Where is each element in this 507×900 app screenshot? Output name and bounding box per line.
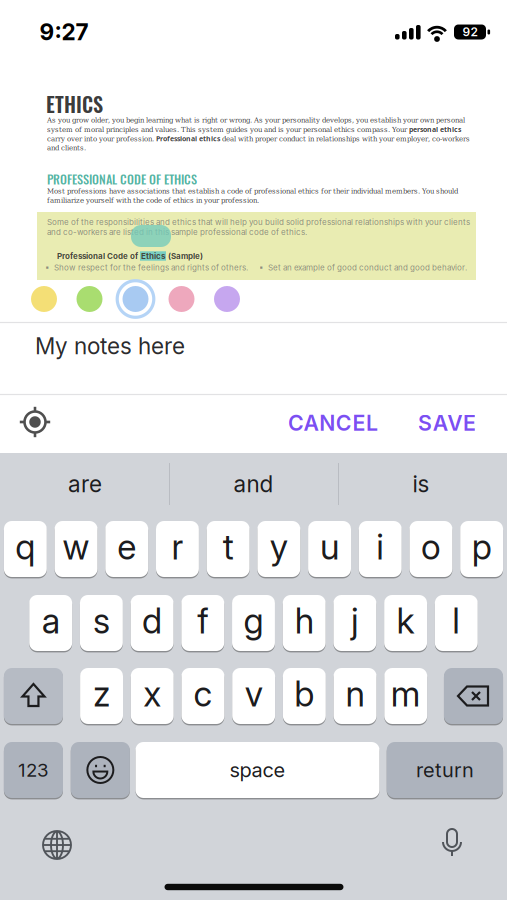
staticText: r <box>171 527 183 567</box>
button[interactable]: Dictate <box>440 827 464 861</box>
staticText: e <box>117 527 136 567</box>
button[interactable]: c <box>181 668 224 724</box>
button[interactable]: Locate annotation <box>15 402 55 442</box>
staticText: As you grow older, you begin learning wh… <box>47 116 465 124</box>
staticText: ▪ Set an example of good conduct and goo… <box>259 263 467 272</box>
button[interactable]: space <box>135 742 379 798</box>
button[interactable]: h <box>283 595 326 651</box>
button[interactable]: d <box>131 595 174 651</box>
button[interactable]: Delete <box>444 668 503 724</box>
staticText: s <box>93 601 110 641</box>
staticText: is <box>412 471 429 497</box>
button[interactable]: SAVE <box>410 402 484 444</box>
staticText: and co-workers are listed in this sample… <box>47 227 307 237</box>
staticText: c <box>193 674 212 714</box>
staticText: and <box>233 471 273 497</box>
staticText: v <box>245 674 263 714</box>
button[interactable]: Purple highlight <box>214 286 240 312</box>
staticText: f <box>197 601 208 641</box>
staticText: Some of the responsibilities and ethics … <box>47 217 470 227</box>
button[interactable]: j <box>333 595 376 651</box>
button[interactable]: is <box>351 459 491 509</box>
button[interactable]: u <box>308 521 351 577</box>
staticText: x <box>143 674 161 714</box>
staticText: o <box>421 527 441 567</box>
button[interactable]: m <box>384 668 427 724</box>
staticText: (Sample) <box>166 251 203 261</box>
button[interactable]: Pink highlight <box>168 286 194 312</box>
staticText: d <box>142 601 162 641</box>
button[interactable]: z <box>80 668 123 724</box>
staticText: t <box>223 527 234 567</box>
button[interactable]: k <box>384 595 427 651</box>
staticText: system of moral principles and values. T… <box>47 125 461 134</box>
button[interactable]: are <box>15 459 155 509</box>
button[interactable]: g <box>232 595 275 651</box>
button[interactable]: w <box>55 521 97 577</box>
staticText: CANCEL <box>288 410 378 436</box>
button[interactable]: Emoji <box>71 742 130 798</box>
button[interactable]: and <box>183 459 323 509</box>
staticText: 92 <box>462 25 477 39</box>
staticText: SAVE <box>418 410 476 436</box>
staticText: w <box>63 527 90 567</box>
staticText: p <box>472 527 492 567</box>
staticText: u <box>320 527 339 567</box>
staticText: return <box>416 758 474 782</box>
button[interactable]: Yellow highlight <box>31 286 57 312</box>
staticText: b <box>294 674 314 714</box>
button[interactable]: s <box>80 595 123 651</box>
button[interactable]: f <box>181 595 224 651</box>
button[interactable]: 123 <box>4 742 63 798</box>
button[interactable]: p <box>460 521 503 577</box>
staticText: z <box>93 674 110 714</box>
staticText: familiarize yourself with the code of et… <box>47 196 259 204</box>
button[interactable]: CANCEL <box>280 402 386 444</box>
button[interactable]: e <box>105 521 148 577</box>
staticText: space <box>229 758 285 782</box>
button[interactable]: q <box>4 521 47 577</box>
staticText: h <box>295 601 314 641</box>
staticText: i <box>376 527 384 567</box>
button[interactable]: r <box>156 521 199 577</box>
button[interactable]: v <box>232 668 275 724</box>
staticText: 123 <box>18 759 49 781</box>
staticText: y <box>270 527 288 567</box>
staticText: n <box>346 674 365 714</box>
button[interactable]: n <box>334 668 376 724</box>
staticText: My notes here <box>35 333 185 359</box>
staticText: l <box>452 601 460 641</box>
button[interactable]: a <box>29 595 72 651</box>
staticText: Professional Code of <box>57 251 140 261</box>
button[interactable]: return <box>387 742 503 798</box>
button[interactable]: Green highlight <box>76 286 102 312</box>
staticText: Ethics <box>141 251 165 261</box>
staticText: g <box>243 601 263 641</box>
button[interactable]: i <box>359 521 402 577</box>
button[interactable]: t <box>207 521 250 577</box>
staticText: 9:27 <box>39 19 88 45</box>
staticText: ▪ Show respect for the feelings and righ… <box>45 263 248 272</box>
button[interactable]: Blue highlight, selected <box>115 279 155 319</box>
button[interactable]: l <box>435 595 478 651</box>
staticText: Most professions have associations that … <box>47 187 458 195</box>
button[interactable]: x <box>131 668 174 724</box>
button[interactable]: Next keyboard <box>39 827 75 863</box>
staticText: and clients. <box>47 144 86 152</box>
button[interactable]: b <box>283 668 326 724</box>
staticText: q <box>15 527 35 567</box>
staticText: are <box>68 471 102 497</box>
button[interactable]: o <box>409 521 452 577</box>
staticText: k <box>397 601 415 641</box>
staticText: ETHICS <box>46 89 103 119</box>
button[interactable]: Shift <box>4 668 63 724</box>
staticText: carry over into your profession. Profess… <box>47 134 470 143</box>
staticText: PROFESSIONAL CODE OF ETHICS <box>47 170 197 188</box>
staticText: m <box>391 674 421 714</box>
staticText: a <box>42 601 60 641</box>
button[interactable]: y <box>257 521 300 577</box>
staticText: j <box>351 601 359 641</box>
